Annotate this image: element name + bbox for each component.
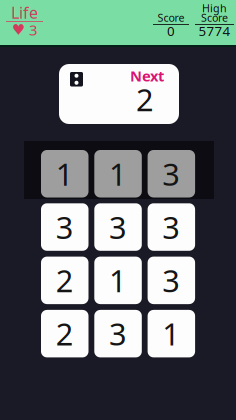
staticText: Score (157, 10, 184, 25)
staticText: High (202, 1, 227, 15)
button[interactable]: 3 (94, 203, 142, 251)
staticText: 3 (109, 207, 127, 247)
button[interactable]: 3 (94, 310, 142, 357)
staticText: 2 (56, 260, 74, 301)
staticText: Score (201, 10, 228, 25)
button[interactable]: 2 (41, 310, 88, 357)
staticText: 2 (56, 313, 74, 354)
staticText: 0 (167, 22, 175, 40)
staticText: 3 (162, 260, 180, 301)
staticText: 1 (109, 153, 127, 194)
staticText: 1 (56, 153, 74, 194)
button[interactable]: 3 (41, 203, 88, 251)
staticText: 1 (109, 260, 127, 301)
staticText: Life (11, 2, 38, 23)
button[interactable]: 1 (94, 150, 142, 197)
button[interactable]: 1 (94, 257, 142, 304)
staticText: 2 (136, 79, 154, 120)
staticText: 3 (162, 153, 180, 194)
staticText: Next (130, 66, 164, 85)
staticText: 5774 (198, 22, 230, 40)
button[interactable]: 3 (148, 150, 195, 197)
staticText: ♥ (12, 21, 25, 38)
staticText: 3 (29, 20, 37, 39)
button[interactable]: 2 (41, 257, 88, 304)
staticText: 3 (56, 207, 74, 247)
button[interactable]: 1 (41, 150, 88, 197)
button[interactable]: 3 (148, 203, 195, 251)
button[interactable]: 1 (148, 310, 195, 357)
button[interactable]: 3 (148, 257, 195, 304)
staticText: 3 (109, 313, 127, 354)
staticText: 3 (162, 207, 180, 247)
staticText: 1 (162, 313, 180, 354)
